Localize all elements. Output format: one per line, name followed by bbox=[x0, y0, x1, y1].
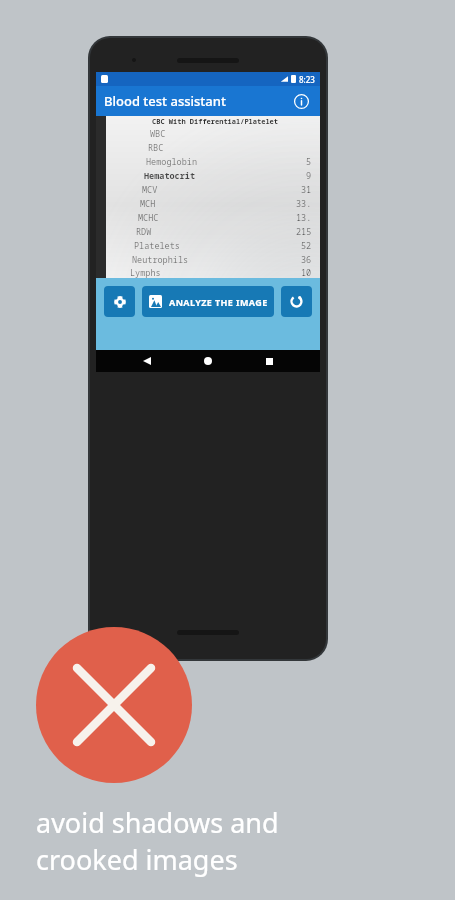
staticText: 215 bbox=[296, 226, 312, 238]
button[interactable]: Back bbox=[137, 351, 157, 371]
staticText: 10 bbox=[301, 267, 312, 278]
button[interactable]: Home bbox=[198, 351, 218, 371]
staticText: RBC bbox=[148, 142, 164, 154]
staticText: 33. bbox=[296, 198, 312, 210]
staticText: Neutrophils bbox=[132, 254, 189, 266]
staticText: 31 bbox=[301, 184, 312, 196]
staticText: 8:23 bbox=[299, 74, 315, 85]
staticText: RDW bbox=[136, 226, 152, 238]
staticText: ANALYZE THE IMAGE bbox=[169, 296, 268, 308]
button[interactable]: Recents bbox=[259, 351, 279, 371]
staticText: CBC With Differential/Platelet bbox=[152, 117, 278, 127]
staticText: Hematocrit bbox=[144, 170, 196, 182]
staticText: avoid shadows and bbox=[36, 804, 279, 841]
staticText: Lymphs bbox=[130, 267, 161, 278]
staticText: WBC bbox=[150, 128, 166, 140]
staticText: MCV bbox=[142, 184, 158, 196]
staticText: 52 bbox=[301, 240, 312, 252]
staticText: Platelets bbox=[134, 240, 180, 252]
staticText: Blood test assistant bbox=[104, 92, 226, 110]
staticText: 9 bbox=[306, 170, 312, 182]
staticText: MCHC bbox=[138, 212, 159, 224]
button[interactable]: ANALYZE THE IMAGE bbox=[142, 286, 274, 317]
staticText: 36 bbox=[301, 254, 312, 266]
button[interactable]: Info bbox=[290, 90, 312, 112]
button[interactable]: Settings bbox=[104, 286, 135, 317]
staticText: Hemoglobin bbox=[146, 156, 198, 168]
staticText: 5 bbox=[306, 156, 312, 168]
button[interactable]: Rotate bbox=[281, 286, 312, 317]
staticText: crooked images bbox=[36, 841, 238, 878]
staticText: MCH bbox=[140, 198, 156, 210]
staticText: 13. bbox=[296, 212, 312, 224]
